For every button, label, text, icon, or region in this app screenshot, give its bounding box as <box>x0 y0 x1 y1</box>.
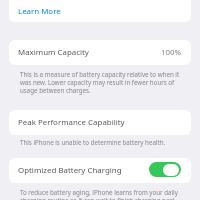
staticText: Learn More <box>18 6 61 17</box>
staticText: Maximum Capacity <box>18 47 89 58</box>
staticText: This is a measure of battery capacity re… <box>20 70 181 94</box>
staticText: 100% <box>161 47 182 58</box>
button[interactable]: Learn More <box>9 0 191 22</box>
staticText: To reduce battery aging, iPhone learns f… <box>20 188 181 200</box>
staticText: This iPhone is unable to determine batte… <box>20 138 181 146</box>
staticText: Peak Performance Capability <box>18 117 125 128</box>
button[interactable]: Maximum Capacity <box>9 40 191 65</box>
staticText: Optimized Battery Charging <box>18 165 122 176</box>
button[interactable]: Optimized Battery Charging, on <box>149 162 181 177</box>
button[interactable]: Peak Performance Capability <box>9 110 191 135</box>
